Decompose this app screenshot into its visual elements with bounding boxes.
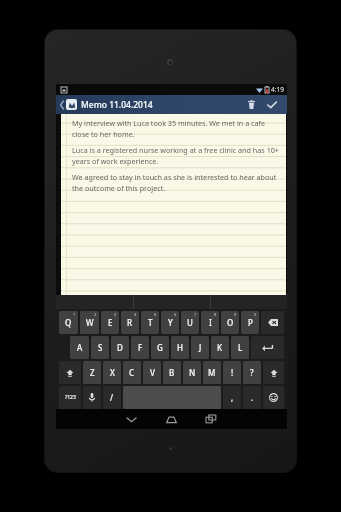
- staticText: F: [138, 342, 143, 353]
- button[interactable]: ,: [223, 386, 241, 409]
- button[interactable]: Y: [161, 311, 179, 334]
- button[interactable]: D: [111, 336, 129, 359]
- staticText: S: [98, 342, 103, 353]
- staticText: H: [177, 342, 183, 353]
- staticText: Memo 11.04.2014: [81, 99, 153, 111]
- button[interactable]: Z: [83, 361, 101, 384]
- staticText: M: [208, 367, 216, 378]
- button[interactable]: Voice input: [83, 386, 101, 409]
- staticText: B: [169, 367, 175, 378]
- staticText: J: [199, 342, 202, 353]
- staticText: ?: [250, 367, 254, 378]
- button[interactable]: T: [141, 311, 159, 334]
- staticText: ,: [231, 392, 234, 403]
- staticText: W: [86, 317, 94, 328]
- button[interactable]: P: [241, 311, 259, 334]
- button[interactable]: M: [203, 361, 221, 384]
- button[interactable]: N: [183, 361, 201, 384]
- button[interactable]: G: [151, 336, 169, 359]
- button[interactable]: E: [101, 311, 119, 334]
- staticText: ?123: [65, 394, 76, 401]
- button[interactable]: Home: [151, 409, 191, 429]
- staticText: G: [157, 342, 163, 353]
- button[interactable]: Backspace: [261, 311, 284, 334]
- staticText: 5: [154, 312, 157, 317]
- button[interactable]: A: [70, 336, 89, 359]
- staticText: 6: [174, 312, 177, 317]
- staticText: 2: [94, 312, 97, 317]
- staticText: D: [117, 342, 123, 353]
- staticText: /: [110, 392, 114, 403]
- staticText: 7: [194, 312, 197, 317]
- button[interactable]: K: [211, 336, 229, 359]
- button[interactable]: H: [171, 336, 189, 359]
- button[interactable]: L: [231, 336, 249, 359]
- staticText: L: [238, 342, 243, 353]
- button[interactable]: Enter: [251, 336, 284, 359]
- staticText: 8: [214, 312, 217, 317]
- staticText: 1: [73, 312, 76, 317]
- button[interactable]: U: [181, 311, 199, 334]
- staticText: We agreed to stay in touch as she is int…: [72, 172, 280, 193]
- staticText: 3: [114, 312, 117, 317]
- staticText: E: [108, 317, 113, 328]
- button[interactable]: /: [103, 386, 121, 409]
- button[interactable]: B: [163, 361, 181, 384]
- staticText: Q: [65, 317, 72, 328]
- button[interactable]: J: [191, 336, 209, 359]
- button[interactable]: I: [201, 311, 219, 334]
- staticText: My interview with Luca took 35 minutes. …: [72, 118, 280, 139]
- staticText: O: [227, 317, 234, 328]
- staticText: Z: [90, 367, 95, 378]
- button[interactable]: W: [80, 311, 99, 334]
- button[interactable]: !: [223, 361, 241, 384]
- staticText: !: [231, 367, 234, 378]
- staticText: .: [251, 392, 254, 403]
- staticText: P: [248, 317, 253, 328]
- button[interactable]: C: [123, 361, 141, 384]
- staticText: 0: [254, 312, 257, 317]
- button[interactable]: ?123: [59, 386, 81, 409]
- staticText: Luca is a registered nurse working at a …: [72, 145, 280, 166]
- staticText: T: [148, 317, 153, 328]
- button[interactable]: Navigate up: [59, 99, 78, 110]
- button[interactable]: Recent apps: [191, 409, 231, 429]
- staticText: Y: [168, 317, 173, 328]
- button[interactable]: V: [143, 361, 161, 384]
- staticText: 9: [234, 312, 237, 317]
- staticText: 4:19: [271, 85, 284, 94]
- button[interactable]: R: [121, 311, 139, 334]
- button[interactable]: Hide keyboard: [111, 409, 151, 429]
- button[interactable]: S: [91, 336, 109, 359]
- button[interactable]: Shift: [59, 361, 81, 384]
- staticText: K: [217, 342, 223, 353]
- staticText: N: [189, 367, 196, 378]
- staticText: R: [127, 317, 133, 328]
- staticText: U: [187, 317, 193, 328]
- staticText: A: [77, 342, 83, 353]
- button[interactable]: My interview with Luca took 35 minutes. …: [61, 114, 286, 295]
- button[interactable]: Shift: [263, 361, 284, 384]
- button[interactable]: .: [243, 386, 261, 409]
- button[interactable]: Delete: [241, 95, 261, 114]
- button[interactable]: ?: [243, 361, 261, 384]
- button[interactable]: X: [103, 361, 121, 384]
- button[interactable]: Save: [261, 95, 283, 114]
- staticText: X: [110, 367, 115, 378]
- button[interactable]: Emoji: [263, 386, 284, 409]
- button[interactable]: F: [131, 336, 149, 359]
- staticText: I: [209, 317, 212, 328]
- button[interactable]: O: [221, 311, 239, 334]
- button[interactable]: Q: [59, 311, 78, 334]
- staticText: C: [129, 367, 135, 378]
- staticText: 4: [134, 312, 137, 317]
- staticText: V: [150, 367, 155, 378]
